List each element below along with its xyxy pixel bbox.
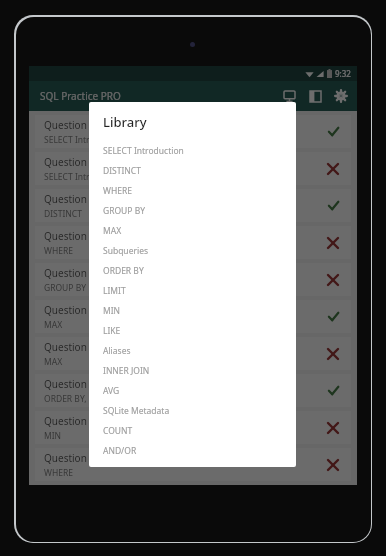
- staticText: MAX: [44, 319, 63, 331]
- staticText: SELECT Introduction: [103, 145, 184, 157]
- staticText: Question #2: [44, 155, 102, 169]
- staticText: COUNT: [103, 425, 133, 437]
- button[interactable]: AVG: [89, 381, 296, 401]
- staticText: AVG: [103, 385, 120, 397]
- staticText: LIMIT: [103, 285, 126, 297]
- staticText: MAX: [103, 225, 122, 237]
- staticText: MIN: [103, 305, 121, 317]
- staticText: ORDER BY, LIMIT: [44, 393, 112, 405]
- button[interactable]: Settings: [328, 83, 354, 109]
- button[interactable]: GROUP BY: [89, 201, 296, 221]
- staticText: Question #6: [44, 303, 102, 317]
- button[interactable]: Aliases: [89, 341, 296, 361]
- staticText: MIN: [44, 430, 62, 442]
- staticText: Question #5: [44, 266, 102, 280]
- staticText: SQL Practice PRO: [40, 89, 121, 103]
- staticText: Aliases: [103, 345, 131, 357]
- staticText: MAX: [44, 356, 63, 368]
- button[interactable]: Question #6: [35, 300, 351, 333]
- staticText: WHERE: [44, 467, 73, 479]
- button[interactable]: Question #7: [35, 337, 351, 370]
- button[interactable]: MAX: [89, 221, 296, 241]
- button[interactable]: ORDER BY: [89, 261, 296, 281]
- button[interactable]: DISTINCT: [89, 161, 296, 181]
- staticText: Question #3: [44, 192, 102, 206]
- button[interactable]: Question #3: [35, 189, 351, 222]
- button[interactable]: Question #4: [35, 226, 351, 259]
- staticText: Question #1: [44, 118, 102, 132]
- staticText: INNER JOIN: [103, 365, 150, 377]
- button[interactable]: Console: [276, 83, 302, 109]
- button[interactable]: Question #10: [35, 448, 351, 481]
- staticText: GROUP BY: [103, 205, 146, 217]
- staticText: GROUP BY: [44, 282, 87, 294]
- button[interactable]: Subqueries: [89, 241, 296, 261]
- button[interactable]: LIKE: [89, 321, 296, 341]
- button[interactable]: Question #9: [35, 411, 351, 444]
- button[interactable]: Question #2: [35, 152, 351, 185]
- staticText: SELECT Introduction: [44, 134, 125, 146]
- button[interactable]: AND/OR: [89, 441, 296, 461]
- staticText: DISTINCT: [103, 165, 141, 177]
- staticText: LIKE: [103, 325, 121, 337]
- button[interactable]: INNER JOIN: [89, 361, 296, 381]
- staticText: AND/OR: [103, 445, 137, 457]
- button[interactable]: Question #5: [35, 263, 351, 296]
- button[interactable]: WHERE: [89, 181, 296, 201]
- staticText: Library: [103, 113, 147, 131]
- staticText: Question #7: [44, 340, 102, 354]
- button[interactable]: SELECT Introduction: [89, 141, 296, 161]
- staticText: WHERE: [44, 245, 73, 257]
- staticText: 9:32: [335, 68, 351, 79]
- button[interactable]: Library: [302, 83, 328, 109]
- button[interactable]: COUNT: [89, 421, 296, 441]
- button[interactable]: Question #1: [35, 115, 351, 148]
- staticText: Subqueries: [103, 245, 148, 257]
- staticText: SELECT Introduction: [44, 171, 125, 183]
- button[interactable]: LIMIT: [89, 281, 296, 301]
- staticText: Question #10: [44, 451, 108, 465]
- staticText: Question #8: [44, 377, 102, 391]
- staticText: Question #4: [44, 229, 102, 243]
- staticText: Question #9: [44, 414, 102, 428]
- button[interactable]: SQLite Metadata: [89, 401, 296, 421]
- staticText: SQLite Metadata: [103, 405, 170, 417]
- button[interactable]: MIN: [89, 301, 296, 321]
- staticText: DISTINCT: [44, 208, 82, 220]
- button[interactable]: Question #8: [35, 374, 351, 407]
- staticText: WHERE: [103, 185, 132, 197]
- staticText: ORDER BY: [103, 265, 144, 277]
